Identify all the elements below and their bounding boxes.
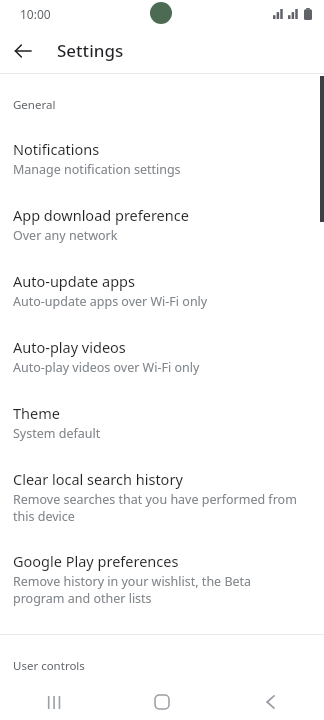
staticText: Over any network [13,227,118,244]
staticText: Settings [57,39,124,62]
staticText: System default [13,425,101,442]
staticText: Auto-play videos [13,337,126,357]
button[interactable]: Recent apps [0,684,108,720]
button[interactable]: Auto-update apps [0,244,324,310]
button[interactable]: Google Play preferences [0,524,324,606]
button[interactable]: Back [6,34,40,68]
staticText: App download preference [13,205,189,225]
staticText: Manage notification settings [13,161,181,178]
staticText: General [13,97,56,113]
staticText: Notifications [13,139,100,159]
staticText: 10:00 [20,6,51,22]
button[interactable]: Clear local search history [0,442,324,524]
staticText: Auto-update apps over Wi-Fi only [13,293,208,310]
button[interactable]: Back [216,684,324,720]
button[interactable]: Theme [0,376,324,442]
button[interactable]: App download preference [0,178,324,244]
button[interactable]: Home [108,684,216,720]
staticText: Remove history in your wishlist, the Bet… [13,573,302,606]
button[interactable]: Auto-play videos [0,310,324,376]
staticText: Auto-play videos over Wi-Fi only [13,359,200,376]
staticText: Remove searches that you have performed … [13,491,302,524]
staticText: Theme [13,403,60,423]
staticText: Auto-update apps [13,271,135,291]
staticText: Clear local search history [13,469,183,489]
staticText: Google Play preferences [13,551,179,571]
staticText: User controls [13,658,85,674]
button[interactable]: Notifications [0,113,324,178]
